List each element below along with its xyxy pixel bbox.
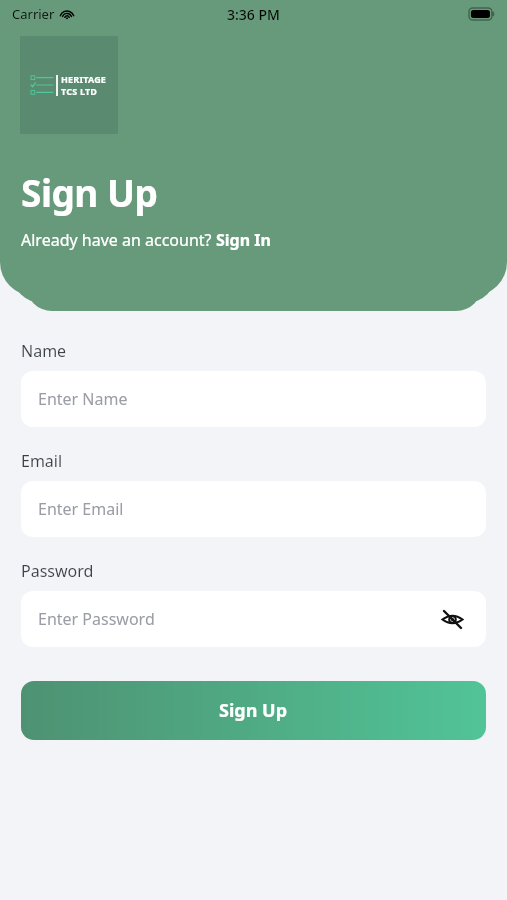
staticText: 3:36 PM	[227, 5, 280, 24]
staticText: Enter Name	[38, 388, 469, 410]
staticText: Name	[21, 340, 67, 362]
button[interactable]: Enter Email	[21, 481, 486, 537]
button[interactable]: Sign Up	[21, 681, 486, 740]
staticText: Sign In	[216, 229, 271, 251]
button[interactable]: Sign In	[216, 229, 271, 251]
staticText: Email	[21, 450, 63, 472]
staticText: TCS LTD	[61, 85, 98, 97]
staticText: Password	[21, 560, 94, 582]
staticText: HERITAGE	[61, 73, 107, 85]
button[interactable]: Show password	[435, 602, 469, 636]
staticText: Enter Email	[38, 498, 469, 520]
staticText: Sign Up	[219, 698, 288, 723]
button[interactable]: Enter Password	[21, 591, 486, 647]
staticText: Enter Password	[38, 608, 435, 630]
staticText: Carrier	[12, 5, 55, 23]
button[interactable]: Enter Name	[21, 371, 486, 427]
staticText: Sign Up	[21, 167, 158, 217]
staticText: Already have an account?	[21, 229, 216, 251]
